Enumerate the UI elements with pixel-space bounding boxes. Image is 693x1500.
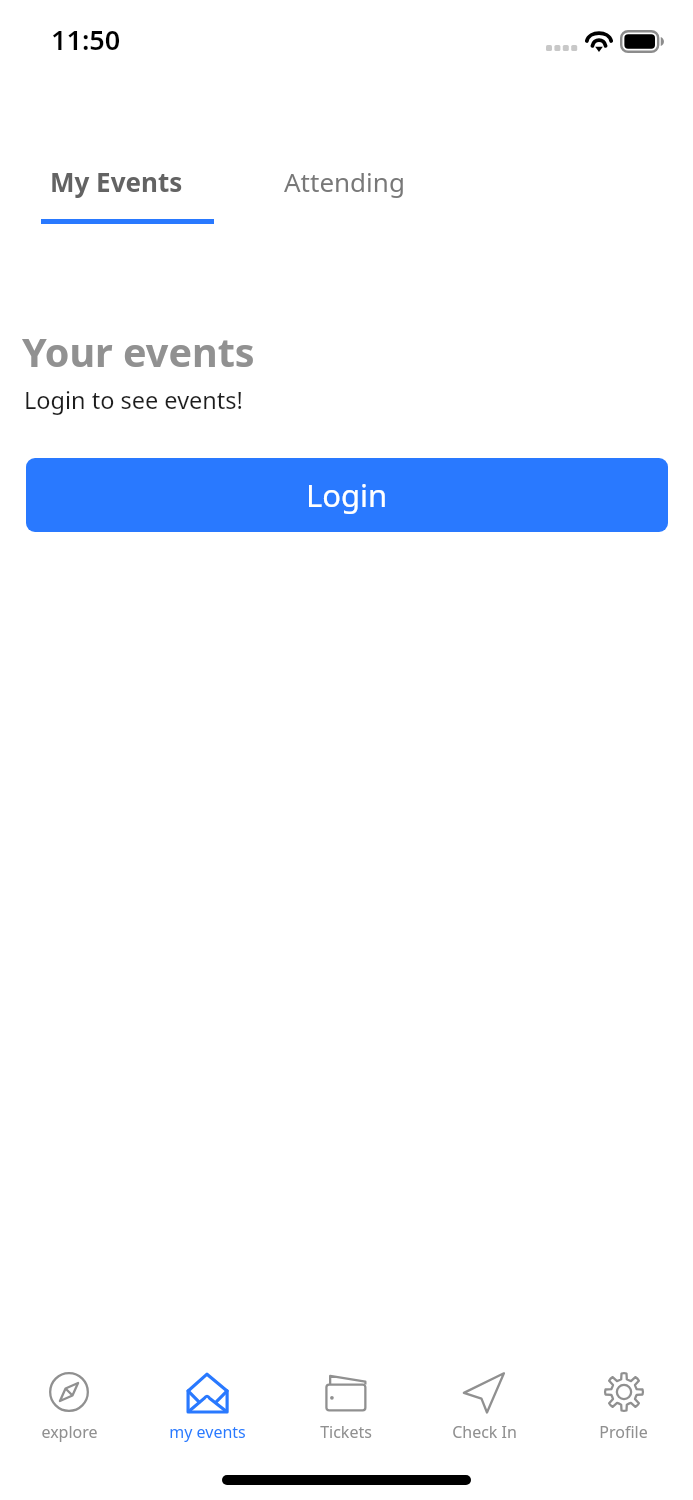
button[interactable]: Login <box>26 458 668 532</box>
staticText: Login to see events! <box>24 384 243 416</box>
staticText: Attending <box>284 164 405 199</box>
button[interactable]: explore <box>0 1350 138 1454</box>
staticText: explore <box>41 1421 98 1443</box>
other: Home indicator <box>222 1475 471 1485</box>
button[interactable]: my events <box>138 1350 276 1454</box>
staticText: Your events <box>22 325 255 379</box>
staticText: Profile <box>599 1421 648 1443</box>
button[interactable]: Profile <box>554 1350 693 1454</box>
staticText: Tickets <box>320 1421 372 1443</box>
button[interactable]: Tickets <box>276 1350 415 1454</box>
staticText: 11:50 <box>51 21 121 58</box>
staticText: Login <box>306 474 388 516</box>
button[interactable]: My Events <box>41 140 214 224</box>
button[interactable]: Attending <box>214 140 430 224</box>
staticText: Check In <box>452 1421 517 1443</box>
staticText: my events <box>169 1421 246 1443</box>
staticText: My Events <box>50 164 183 199</box>
button[interactable]: Check In <box>415 1350 554 1454</box>
